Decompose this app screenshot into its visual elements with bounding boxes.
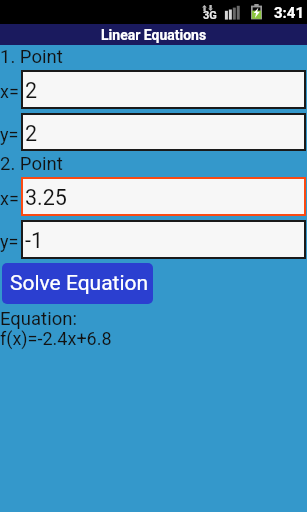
staticText: 3:41 (274, 4, 305, 22)
staticText: 3.25 (25, 185, 67, 210)
button[interactable]: Solve Equation (2, 263, 153, 304)
staticText: 2. Point (0, 153, 63, 175)
staticText: 3G (203, 9, 217, 22)
staticText: x= (0, 188, 19, 209)
button[interactable]: 3.25 (21, 177, 306, 216)
staticText: Equation: (0, 308, 77, 330)
staticText: y= (0, 124, 19, 145)
other: Battery charging (251, 4, 262, 20)
staticText: Solve Equation (10, 271, 149, 296)
button[interactable]: -1 (21, 220, 306, 259)
staticText: Linear Equations (101, 27, 207, 43)
staticText: 2 (25, 121, 38, 146)
other: Mobile data activity (202, 5, 213, 11)
button[interactable]: 2 (21, 113, 306, 151)
staticText: -1 (25, 228, 44, 253)
staticText: x= (0, 81, 19, 102)
button[interactable]: 2 (21, 70, 306, 109)
staticText: 1. Point (0, 46, 63, 68)
staticText: 2 (25, 78, 38, 103)
other: Signal strength (224, 5, 240, 20)
staticText: y= (0, 231, 19, 252)
staticText: f(x)=-2.4x+6.8 (0, 328, 112, 349)
